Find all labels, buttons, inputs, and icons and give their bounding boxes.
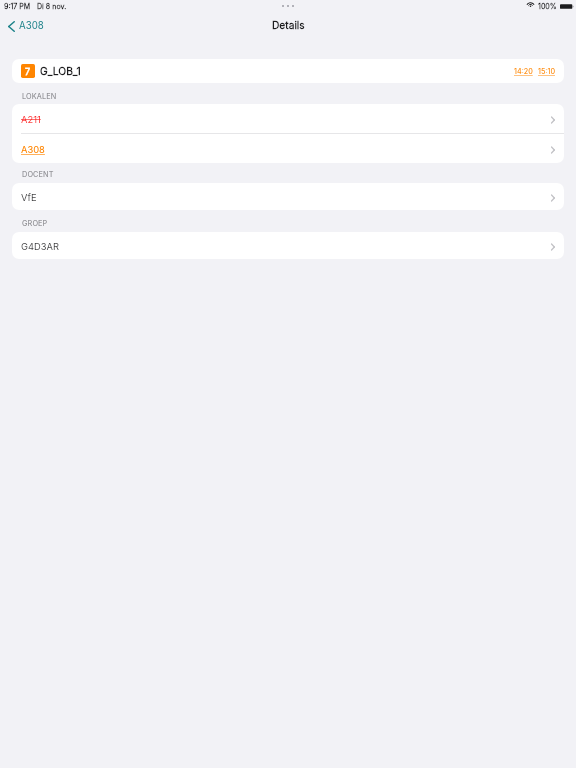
button[interactable]: 7 [12,59,564,83]
staticText: 15:10 [538,67,555,76]
other: Wi-Fi [526,0,535,7]
button[interactable]: A308 [12,134,564,163]
button[interactable]: G4D3AR [12,232,564,259]
staticText: Details [272,19,305,31]
staticText: A308 [19,20,44,32]
other: Open [546,192,555,204]
staticText: A211 [21,114,41,125]
staticText: DOCENT [22,170,54,179]
other: Open [546,241,555,253]
staticText: G_LOB_1 [40,65,81,77]
staticText: A308 [21,144,45,155]
staticText: 9:17 PM [4,2,31,11]
other: Open [546,144,555,156]
staticText: 7 [25,66,31,77]
button[interactable]: A211 [12,104,564,133]
staticText: LOKALEN [22,92,57,101]
staticText: 14:20 [514,67,533,76]
staticText: VfE [21,192,37,203]
button[interactable]: VfE [12,183,564,210]
staticText: G4D3AR [21,241,59,252]
button[interactable]: A308 [5,17,47,35]
other: Open [546,114,555,126]
other: Battery [560,3,573,10]
staticText: Di 8 nov. [37,2,67,11]
staticText: 100% [538,2,557,11]
staticText: GROEP [22,219,48,228]
